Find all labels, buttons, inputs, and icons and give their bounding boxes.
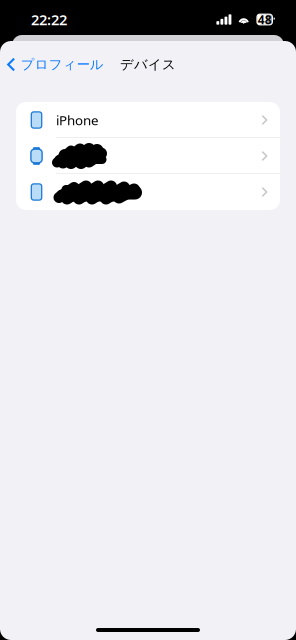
button[interactable]	[16, 138, 280, 174]
staticText: 48	[258, 11, 272, 27]
button[interactable]	[16, 174, 280, 210]
staticText: デバイス	[120, 56, 176, 73]
button[interactable]: プロフィール	[0, 46, 110, 82]
staticText: iPhone	[56, 111, 99, 129]
button[interactable]: iPhone	[16, 102, 280, 138]
staticText: プロフィール	[21, 56, 104, 73]
staticText: 22:22	[31, 10, 67, 29]
